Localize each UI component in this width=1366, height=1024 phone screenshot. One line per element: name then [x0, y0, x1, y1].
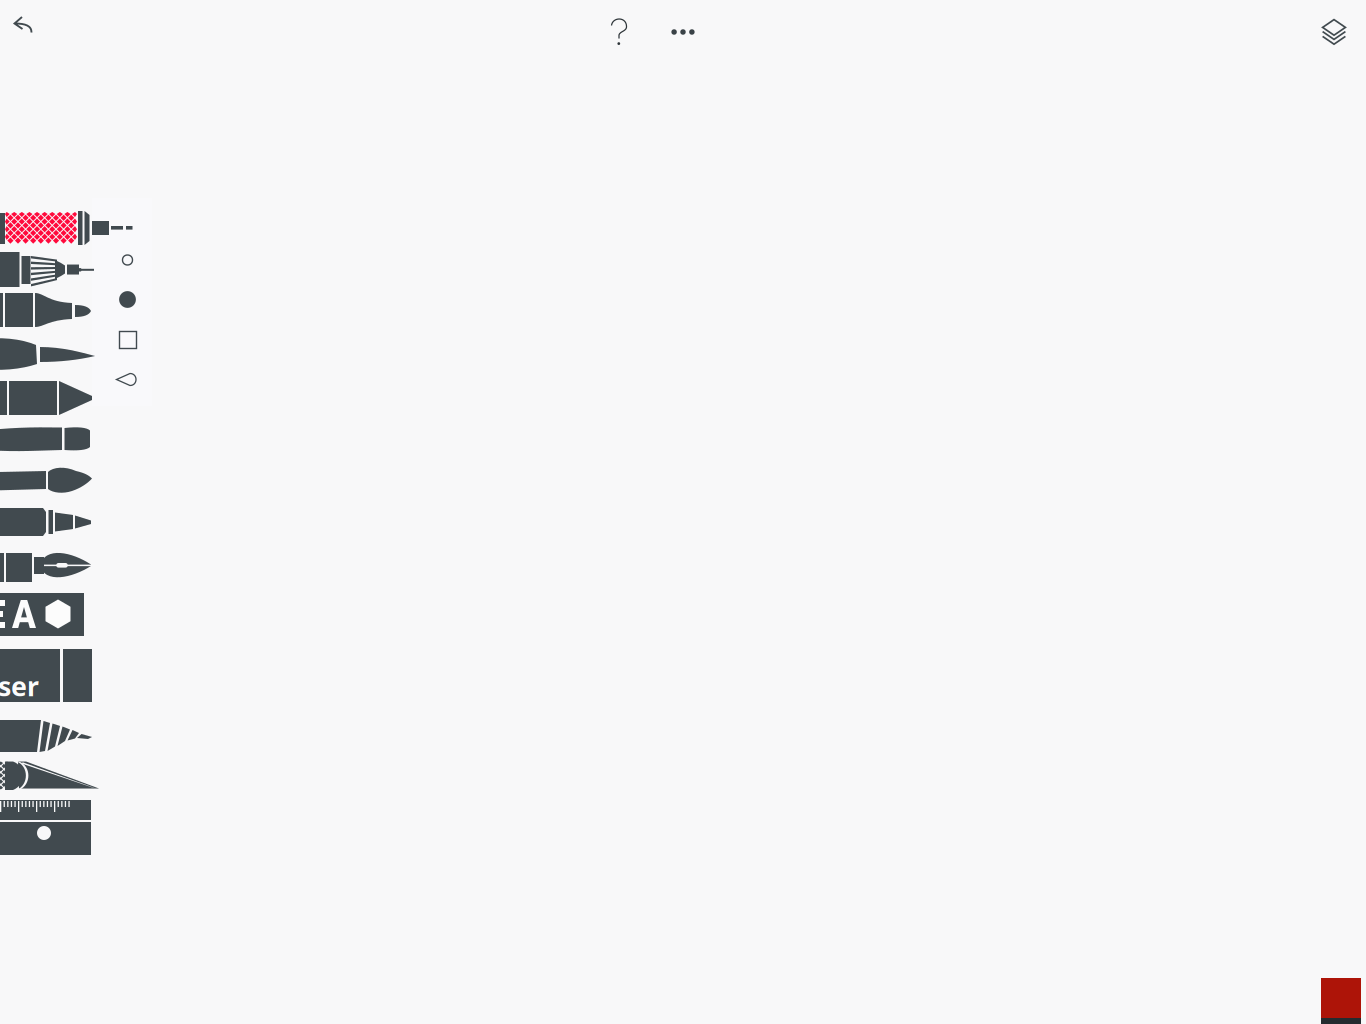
button[interactable]: Ellipse tool — [107, 240, 147, 280]
button[interactable]: Brush pen — [0, 333, 96, 373]
button[interactable]: Pastel — [0, 423, 96, 455]
button[interactable]: Marker — [0, 290, 96, 330]
button[interactable]: Ballpoint pen — [0, 505, 96, 539]
button[interactable]: Craft knife — [0, 716, 96, 756]
button[interactable]: Eraser — [0, 646, 96, 704]
button[interactable]: Filled ellipse tool — [107, 279, 147, 319]
button[interactable]: Fountain pen — [0, 548, 96, 586]
button[interactable]: Rectangle tool — [108, 320, 148, 360]
button[interactable]: Lasso tool — [108, 360, 148, 400]
button[interactable]: Pencil, selected — [0, 208, 96, 248]
button[interactable]: Watercolour brush — [0, 465, 96, 497]
button[interactable]: Ruler — [0, 797, 96, 857]
button[interactable]: Help — [597, 6, 641, 52]
button[interactable]: Layers — [1312, 10, 1356, 54]
button[interactable]: Watercolour paint — [0, 590, 96, 638]
button[interactable]: Technical pen — [0, 249, 96, 289]
button[interactable]: Palette knife — [0, 758, 96, 794]
button[interactable]: Current colour — [1321, 978, 1361, 1024]
button[interactable]: Pencil — [0, 378, 96, 418]
button[interactable]: Undo — [0, 0, 46, 46]
staticText: ser — [0, 668, 39, 704]
button[interactable]: More options — [662, 12, 702, 52]
